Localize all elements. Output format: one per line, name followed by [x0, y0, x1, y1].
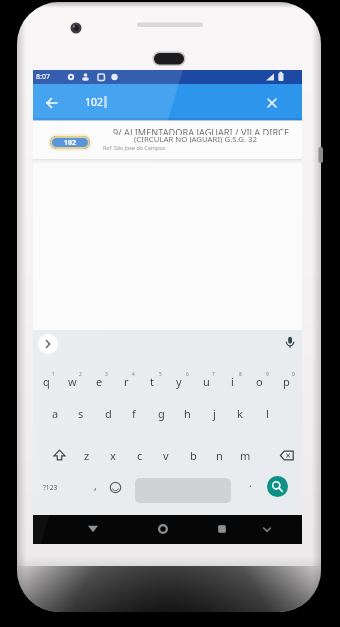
- staticText: s: [78, 406, 84, 421]
- staticText: w: [68, 374, 77, 389]
- button[interactable]: [267, 476, 288, 497]
- staticText: f: [132, 406, 136, 421]
- staticText: r: [124, 374, 129, 389]
- staticText: i: [231, 374, 234, 389]
- staticText: (CIRCULAR NO JAGUARI) G.S.G. 32: [134, 134, 257, 143]
- staticText: .: [249, 476, 252, 490]
- staticText: Ref. São Jose do Campos: [103, 144, 165, 151]
- staticText: 9: [266, 371, 269, 378]
- button[interactable]: e: [86, 373, 112, 390]
- button[interactable]: z: [74, 447, 100, 464]
- staticText: ?123: [43, 483, 58, 492]
- button[interactable]: [52, 449, 67, 462]
- staticText: ,: [94, 479, 97, 493]
- staticText: e: [96, 374, 103, 389]
- button[interactable]: t: [139, 373, 165, 390]
- staticText: z: [84, 448, 90, 463]
- button[interactable]: b: [180, 447, 206, 464]
- button[interactable]: [154, 519, 172, 539]
- button[interactable]: m: [232, 447, 258, 464]
- staticText: 0: [292, 371, 295, 378]
- button[interactable]: [84, 519, 102, 539]
- button[interactable]: w: [59, 373, 85, 390]
- button[interactable]: ?123: [36, 480, 64, 495]
- button[interactable]: f: [121, 405, 147, 422]
- staticText: t: [150, 374, 154, 389]
- button[interactable]: [265, 96, 279, 110]
- button[interactable]: c: [127, 447, 153, 464]
- staticText: m: [240, 448, 251, 463]
- staticText: b: [190, 448, 197, 463]
- staticText: 9/ ALIMENTADORA JAGUARI / VILA DIRCE: [113, 126, 290, 135]
- staticText: 8:07: [36, 72, 50, 82]
- staticText: v: [163, 448, 169, 463]
- button[interactable]: k: [227, 405, 253, 422]
- button[interactable]: h: [174, 405, 200, 422]
- button[interactable]: r: [113, 373, 139, 390]
- staticText: 1: [52, 371, 55, 378]
- staticText: h: [184, 406, 191, 421]
- button[interactable]: [284, 336, 296, 351]
- button[interactable]: o: [246, 373, 272, 390]
- staticText: y: [176, 374, 182, 389]
- button[interactable]: [45, 96, 59, 110]
- staticText: 8: [239, 371, 242, 378]
- staticText: j: [213, 406, 216, 421]
- staticText: a: [52, 406, 59, 421]
- staticText: c: [137, 448, 143, 463]
- staticText: n: [216, 448, 223, 463]
- button[interactable]: j: [201, 405, 227, 422]
- button[interactable]: .: [241, 474, 259, 491]
- button[interactable]: y: [166, 373, 192, 390]
- button[interactable]: u: [193, 373, 219, 390]
- staticText: 6: [186, 371, 189, 378]
- staticText: 2: [79, 371, 82, 378]
- button[interactable]: g: [148, 405, 174, 422]
- button[interactable]: [33, 120, 302, 160]
- staticText: 5: [159, 371, 162, 378]
- staticText: 7: [212, 371, 215, 378]
- staticText: o: [256, 374, 263, 389]
- staticText: l: [266, 406, 269, 421]
- staticText: d: [105, 406, 112, 421]
- button[interactable]: ,: [86, 477, 104, 494]
- button[interactable]: a: [42, 405, 68, 422]
- button[interactable]: [259, 521, 275, 537]
- staticText: p: [283, 374, 290, 389]
- button[interactable]: v: [153, 447, 179, 464]
- button[interactable]: x: [100, 447, 126, 464]
- staticText: 102: [64, 138, 77, 148]
- button[interactable]: q: [33, 373, 59, 390]
- staticText: 4: [132, 371, 135, 378]
- button[interactable]: [38, 334, 58, 354]
- staticText: 3: [105, 371, 108, 378]
- button[interactable]: i: [219, 373, 245, 390]
- staticText: k: [237, 406, 243, 421]
- staticText: 102: [85, 95, 104, 109]
- staticText: q: [43, 374, 50, 389]
- button[interactable]: d: [95, 405, 121, 422]
- button[interactable]: p: [273, 373, 299, 390]
- button[interactable]: s: [68, 405, 94, 422]
- staticText: u: [203, 374, 210, 389]
- button[interactable]: [279, 450, 295, 462]
- button[interactable]: [213, 519, 231, 539]
- staticText: g: [158, 406, 165, 421]
- button[interactable]: l: [254, 405, 280, 422]
- staticText: x: [110, 448, 116, 463]
- button[interactable]: n: [206, 447, 232, 464]
- button[interactable]: [109, 481, 122, 494]
